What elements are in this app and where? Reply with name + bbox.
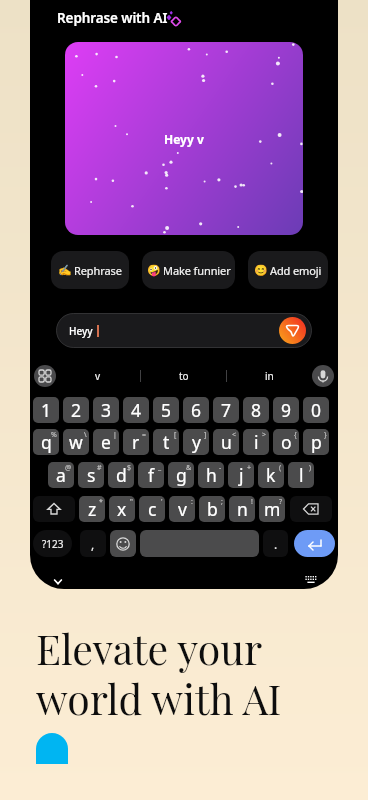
button[interactable]: 🤪: [142, 251, 235, 289]
button[interactable]: ✍️: [51, 251, 129, 289]
button[interactable]: r: [123, 429, 149, 455]
other: AI: [165, 8, 183, 26]
staticText: 8: [251, 398, 262, 422]
button[interactable]: i: [243, 429, 269, 455]
staticText: 3: [101, 398, 112, 422]
staticText: <: [232, 430, 237, 440]
button[interactable]: 😊: [248, 251, 328, 289]
button[interactable]: Emoji: [110, 530, 136, 557]
staticText: 😊: [254, 264, 268, 277]
button[interactable]: e: [93, 429, 119, 455]
button[interactable]: ?123: [33, 530, 72, 557]
button[interactable]: l: [288, 462, 314, 488]
button[interactable]: q: [33, 429, 59, 455]
button[interactable]: u: [213, 429, 239, 455]
button[interactable]: 5: [153, 397, 179, 423]
staticText: z: [88, 497, 97, 521]
button[interactable]: 1: [33, 397, 59, 423]
staticText: world with AI: [36, 671, 282, 726]
button[interactable]: a: [48, 462, 74, 488]
button[interactable]: 9: [273, 397, 299, 423]
staticText: f: [148, 463, 155, 487]
staticText: Rephrase with AI: [57, 9, 168, 27]
staticText: in: [265, 369, 274, 383]
staticText: k: [266, 463, 276, 487]
button[interactable]: v: [169, 496, 195, 522]
button[interactable]: Enter: [294, 530, 335, 557]
staticText: s: [87, 463, 96, 487]
staticText: [: [174, 430, 177, 440]
button[interactable]: 7: [213, 397, 239, 423]
staticText: _: [158, 463, 162, 473]
staticText: 0: [311, 398, 322, 422]
button[interactable]: 2: [63, 397, 89, 423]
staticText: Heyy: [69, 324, 93, 338]
button[interactable]: ,: [80, 530, 106, 557]
other: Collapse keyboard: [52, 578, 64, 586]
button[interactable]: g: [168, 462, 194, 488]
button[interactable]: p: [303, 429, 329, 455]
button[interactable]: j: [228, 462, 254, 488]
staticText: x: [117, 497, 127, 521]
button[interactable]: h: [198, 462, 224, 488]
staticText: ;: [221, 497, 223, 507]
button[interactable]: Send: [279, 317, 306, 344]
staticText: w: [69, 430, 83, 454]
staticText: 1: [41, 398, 52, 422]
button[interactable]: w: [63, 429, 89, 455]
button[interactable]: m: [259, 496, 285, 522]
button[interactable]: Voice input: [312, 365, 334, 387]
staticText: 5: [161, 398, 172, 422]
staticText: +: [247, 463, 252, 473]
button[interactable]: .: [263, 530, 288, 557]
button[interactable]: z: [79, 496, 105, 522]
staticText: n: [237, 497, 248, 521]
button[interactable]: 0: [303, 397, 329, 423]
button[interactable]: Heyy: [56, 313, 312, 348]
button[interactable]: s: [78, 462, 104, 488]
staticText: t: [163, 430, 170, 454]
staticText: ,: [91, 536, 95, 552]
staticText: 4: [131, 398, 142, 422]
button[interactable]: Shift: [33, 496, 75, 522]
button[interactable]: f: [138, 462, 164, 488]
staticText: q: [41, 430, 52, 454]
button[interactable]: t: [153, 429, 179, 455]
staticText: i: [254, 430, 259, 454]
button[interactable]: Backspace: [290, 496, 332, 522]
staticText: Elevate your: [36, 621, 263, 676]
staticText: 9: [281, 398, 292, 422]
staticText: c: [148, 497, 157, 521]
staticText: o: [281, 430, 292, 454]
staticText: }: [324, 430, 327, 440]
button[interactable]: 3: [93, 397, 119, 423]
staticText: %: [51, 430, 57, 440]
staticText: *: [99, 497, 103, 507]
button[interactable]: y: [183, 429, 209, 455]
button[interactable]: x: [109, 496, 135, 522]
staticText: Rephrase: [74, 263, 122, 278]
button[interactable]: n: [229, 496, 255, 522]
staticText: ?: [279, 497, 283, 507]
staticText: $: [127, 463, 132, 473]
staticText: v: [95, 369, 101, 383]
staticText: :: [191, 497, 193, 507]
staticText: ?123: [42, 537, 64, 551]
button[interactable]: 4: [123, 397, 149, 423]
button[interactable]: Space: [140, 530, 259, 557]
staticText: @: [65, 463, 72, 473]
button[interactable]: 8: [243, 397, 269, 423]
staticText: Heyy v: [164, 131, 204, 147]
button[interactable]: o: [273, 429, 299, 455]
button[interactable]: b: [199, 496, 225, 522]
staticText: p: [311, 430, 322, 454]
button[interactable]: d: [108, 462, 134, 488]
button[interactable]: k: [258, 462, 284, 488]
button[interactable]: 6: [183, 397, 209, 423]
staticText: v: [178, 497, 187, 521]
staticText: m: [264, 497, 281, 521]
staticText: d: [116, 463, 127, 487]
staticText: \: [84, 430, 87, 440]
button[interactable]: c: [139, 496, 165, 522]
button[interactable]: Apps: [34, 365, 56, 387]
